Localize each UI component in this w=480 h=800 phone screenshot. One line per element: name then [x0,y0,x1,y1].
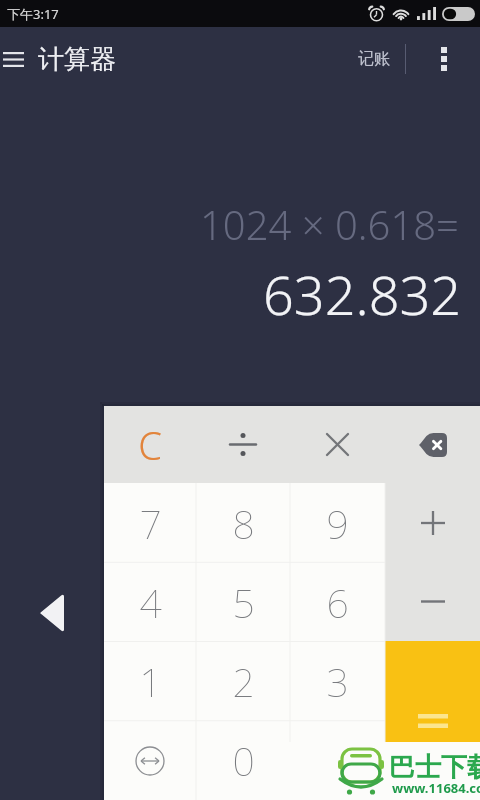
staticText: 2 [232,655,255,708]
staticText: 5 [232,576,255,629]
staticText: 下午3:17 [7,5,59,23]
button[interactable]: Unit convert [104,721,196,800]
button[interactable]: Minus [385,562,480,641]
staticText: 7 [139,497,162,550]
button[interactable]: 8 [196,483,290,563]
button[interactable]: 4 [104,563,196,642]
staticText: C [138,419,162,471]
button[interactable]: 记账 [348,37,400,81]
staticText: . [333,734,342,787]
button[interactable]: 0 [196,721,290,800]
button[interactable]: Divide [196,406,290,483]
staticText: 记账 [358,49,390,69]
button[interactable]: 7 [104,483,196,563]
button[interactable]: 3 [290,642,385,721]
button[interactable]: Plus [385,483,480,562]
staticText: 1024 × 0.618= [200,197,459,251]
button[interactable]: 1 [104,642,196,721]
staticText: 9 [326,497,349,550]
button[interactable]: 2 [196,642,290,721]
button[interactable]: 5 [196,563,290,642]
button[interactable]: Equals [385,641,480,800]
staticText: 632.832 [263,257,462,331]
button[interactable]: C [104,406,196,483]
staticText: 计算器 [38,43,116,76]
staticText: 6 [326,576,349,629]
staticText: 4 [139,576,162,629]
staticText: 8 [232,497,255,550]
staticText: 1 [139,655,162,708]
button[interactable]: Backspace [385,406,480,483]
button[interactable]: More options [422,37,466,81]
button[interactable]: 6 [290,563,385,642]
button[interactable]: 9 [290,483,385,563]
button[interactable]: . [290,721,385,800]
button[interactable]: Show history [40,594,64,632]
staticText: 巴士下载 [389,751,480,784]
button[interactable]: Menu [0,37,36,81]
staticText: 3 [326,655,349,708]
staticText: 0 [232,734,255,787]
button[interactable]: Multiply [290,406,385,483]
staticText: www.11684.com [392,779,480,797]
